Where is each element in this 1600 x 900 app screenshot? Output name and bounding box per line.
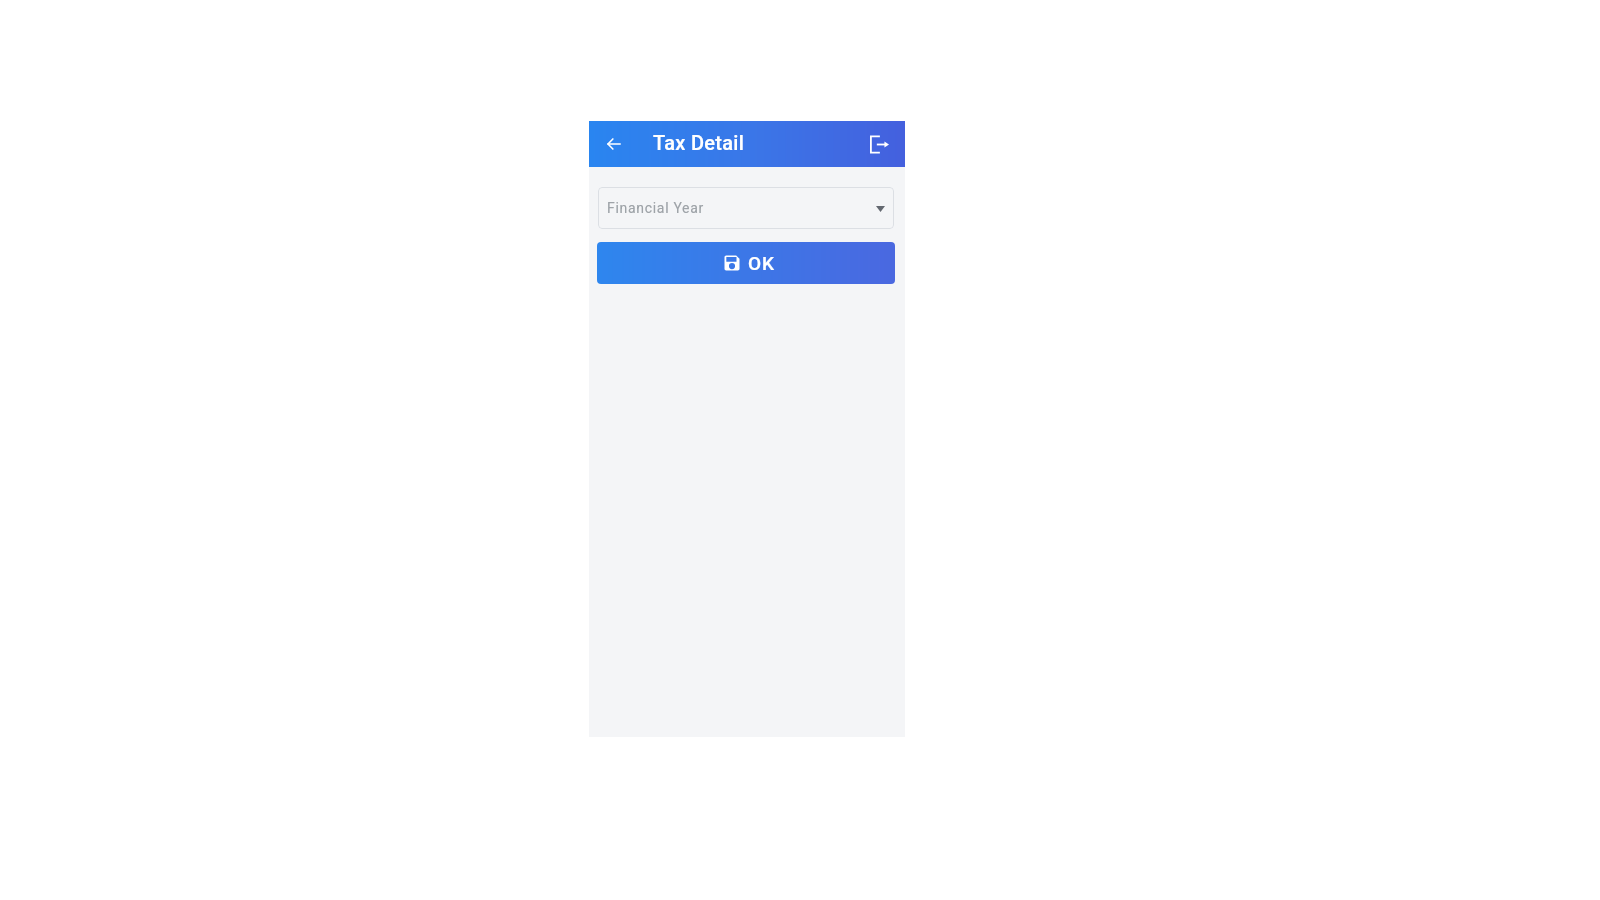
button[interactable]: Financial Year bbox=[598, 187, 894, 229]
button[interactable]: OK bbox=[597, 242, 895, 284]
staticText: OK bbox=[748, 252, 775, 274]
staticText: Financial Year bbox=[607, 200, 704, 216]
button[interactable]: Back bbox=[598, 128, 630, 160]
button[interactable]: Logout bbox=[863, 128, 895, 160]
staticText: Tax Detail bbox=[653, 131, 745, 154]
